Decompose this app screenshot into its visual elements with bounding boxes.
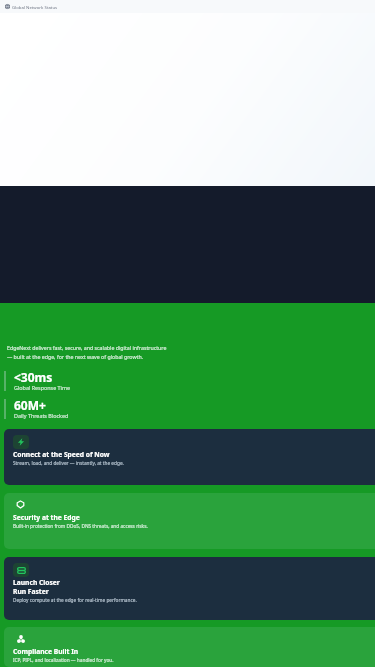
other: Globe xyxy=(5,4,10,9)
button[interactable]: Edge compute xyxy=(4,557,375,620)
staticText: EdgeNext delivers fast, secure, and scal… xyxy=(7,344,167,361)
button[interactable]: Globe xyxy=(0,0,375,13)
staticText: Global Network Status xyxy=(12,4,58,10)
staticText: Security at the Edge xyxy=(13,513,80,522)
staticText: ICP, PIPL, and localization — handled fo… xyxy=(13,657,114,663)
staticText: Global Response Time xyxy=(14,384,71,391)
other: Shield xyxy=(13,497,28,512)
button[interactable]: Compliance xyxy=(4,627,375,667)
button[interactable]: Speed xyxy=(4,429,375,485)
other: Edge compute xyxy=(13,563,29,577)
staticText: <30ms xyxy=(14,369,53,385)
staticText: Launch Closer Run Faster xyxy=(13,578,60,596)
staticText: Connect at the Speed of Now xyxy=(13,450,110,459)
other: Speed xyxy=(13,435,29,449)
other: Compliance xyxy=(13,631,28,646)
staticText: Built-in protection from DDoS, DNS threa… xyxy=(13,523,148,529)
staticText: 60M+ xyxy=(14,397,46,413)
staticText: Deploy compute at the edge for real-time… xyxy=(13,597,137,603)
button[interactable]: Shield xyxy=(4,493,375,549)
staticText: Stream, load, and deliver — instantly, a… xyxy=(13,460,124,466)
staticText: Compliance Built In xyxy=(13,647,79,656)
staticText: Daily Threats Blocked xyxy=(14,412,69,419)
